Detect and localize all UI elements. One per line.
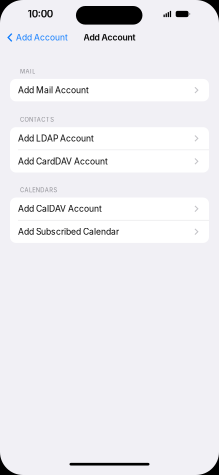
button[interactable]: Add Mail Account xyxy=(10,79,209,101)
button[interactable]: Add LDAP Account xyxy=(10,127,209,150)
staticText: CALENDARS xyxy=(20,187,58,193)
staticText: Add CardDAV Account xyxy=(18,156,108,166)
button[interactable]: Add Account xyxy=(0,29,68,46)
button[interactable]: Add CalDAV Account xyxy=(10,198,209,220)
staticText: Add CalDAV Account xyxy=(18,204,102,214)
staticText: CONTACTS xyxy=(20,116,54,123)
staticText: Add Account xyxy=(16,32,68,43)
staticText: MAIL xyxy=(20,68,35,75)
staticText: Add Mail Account xyxy=(18,85,89,95)
staticText: 10:00 xyxy=(28,8,53,20)
staticText: Add Account xyxy=(83,32,135,43)
staticText: Add LDAP Account xyxy=(18,133,94,143)
button[interactable]: Add Subscribed Calendar xyxy=(10,220,209,243)
staticText: Add Subscribed Calendar xyxy=(18,226,119,237)
button[interactable]: Add CardDAV Account xyxy=(10,150,209,172)
